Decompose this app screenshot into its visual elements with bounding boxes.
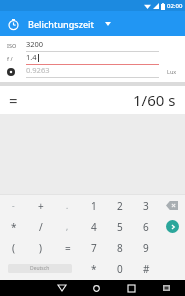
- button[interactable]: *: [80, 258, 107, 279]
- staticText: -: [12, 200, 15, 211]
- staticText: ): [39, 241, 42, 255]
- staticText: *: [91, 262, 97, 276]
- staticText: +: [38, 199, 44, 213]
- staticText: 1.4: [26, 52, 37, 62]
- staticText: *: [11, 220, 17, 234]
- staticText: 0: [117, 262, 123, 276]
- staticText: 5: [117, 220, 123, 234]
- button[interactable]: f /: [0, 52, 185, 65]
- button[interactable]: ISO: [0, 39, 185, 52]
- staticText: 3200: [26, 39, 44, 49]
- button[interactable]: *: [0, 216, 27, 237]
- button[interactable]: Recent apps: [114, 280, 149, 296]
- button[interactable]: ,: [54, 216, 81, 237]
- button[interactable]: Enter: [166, 220, 179, 233]
- staticText: 2: [117, 199, 123, 213]
- staticText: /: [39, 220, 43, 234]
- button[interactable]: 2: [107, 195, 133, 216]
- button[interactable]: Exposure time mode: [4, 15, 22, 33]
- staticText: 6: [143, 220, 149, 234]
- staticText: #: [143, 262, 150, 276]
- staticText: Lux: [167, 68, 177, 75]
- button[interactable]: Home: [79, 280, 114, 296]
- button[interactable]: =: [54, 237, 81, 258]
- staticText: 4: [91, 220, 97, 234]
- button[interactable]: 8: [107, 237, 133, 258]
- staticText: f /: [7, 55, 13, 62]
- button[interactable]: Hide keyboard: [44, 280, 79, 296]
- staticText: 8: [117, 241, 123, 255]
- button[interactable]: +: [27, 195, 54, 216]
- button[interactable]: Switch keyboard: [149, 280, 184, 296]
- staticText: ISO: [7, 42, 17, 49]
- button[interactable]: 9: [133, 237, 159, 258]
- button[interactable]: 0.9263: [0, 65, 185, 78]
- button[interactable]: -: [0, 195, 27, 216]
- staticText: Belichtungszeit: [28, 18, 94, 30]
- button[interactable]: #: [133, 258, 159, 279]
- button[interactable]: 1: [81, 195, 107, 216]
- staticText: .: [66, 200, 69, 211]
- button[interactable]: 3: [133, 195, 159, 216]
- button[interactable]: 5: [107, 216, 133, 237]
- button[interactable]: 6: [133, 216, 159, 237]
- staticText: 9: [143, 241, 149, 255]
- button[interactable]: Backspace: [166, 201, 178, 210]
- staticText: 1/60 s: [133, 90, 176, 110]
- button[interactable]: Belichtungszeit: [28, 18, 111, 30]
- staticText: 7: [91, 241, 97, 255]
- button[interactable]: 7: [81, 237, 107, 258]
- button[interactable]: ): [27, 237, 54, 258]
- staticText: ,: [66, 221, 69, 232]
- staticText: 3: [143, 199, 149, 213]
- button[interactable]: 0: [107, 258, 133, 279]
- staticText: Deutsch: [30, 265, 50, 272]
- button[interactable]: 4: [81, 216, 107, 237]
- button[interactable]: Deutsch: [8, 264, 72, 273]
- staticText: =: [9, 90, 18, 110]
- staticText: 0.9263: [26, 65, 50, 75]
- staticText: 1: [91, 199, 97, 213]
- staticText: (: [12, 241, 15, 255]
- button[interactable]: /: [27, 216, 54, 237]
- staticText: 02:00: [167, 2, 183, 10]
- staticText: =: [65, 241, 71, 255]
- button[interactable]: (: [0, 237, 27, 258]
